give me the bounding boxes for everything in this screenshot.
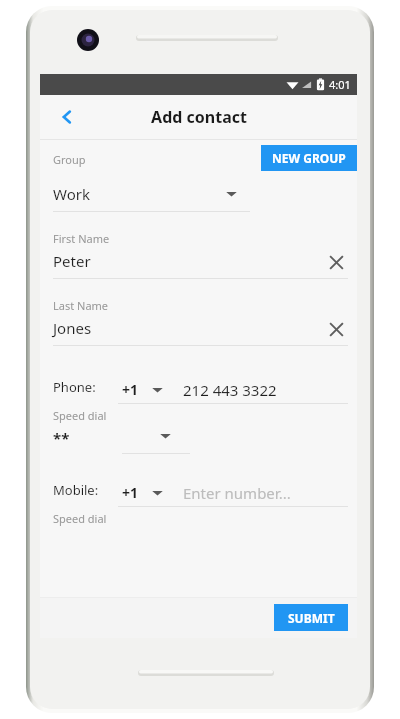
staticText: Mobile: xyxy=(53,481,99,499)
button[interactable]: Clear Last Name xyxy=(323,316,349,342)
staticText: NEW GROUP xyxy=(272,150,346,166)
staticText: SUBMIT xyxy=(288,610,335,626)
staticText: Speed dial xyxy=(53,408,107,423)
staticText: 4:01 xyxy=(329,77,351,92)
staticText: ** xyxy=(53,428,70,448)
staticText: Add contact xyxy=(151,106,247,128)
staticText: Peter xyxy=(53,251,91,271)
button[interactable]: Clear First Name xyxy=(323,249,349,275)
button[interactable]: Select speed dial xyxy=(152,423,178,449)
staticText: +1 xyxy=(122,483,139,502)
staticText: +1 xyxy=(122,380,139,399)
button[interactable]: SUBMIT xyxy=(274,604,348,631)
button[interactable]: Mobile: xyxy=(40,474,357,507)
staticText: Jones xyxy=(53,318,92,338)
button[interactable]: Phone: xyxy=(40,371,357,404)
staticText: Last Name xyxy=(53,298,109,313)
button[interactable]: NEW GROUP xyxy=(261,145,357,171)
staticText: Speed dial xyxy=(53,511,107,526)
staticText: 212 443 3322 xyxy=(183,380,277,400)
staticText: Enter number... xyxy=(183,483,291,503)
button[interactable]: Jones xyxy=(40,313,357,346)
button[interactable]: Peter xyxy=(40,246,357,279)
staticText: Phone: xyxy=(53,378,96,396)
button[interactable]: Back xyxy=(50,100,84,134)
staticText: Work xyxy=(53,184,90,204)
staticText: First Name xyxy=(53,231,110,246)
button[interactable]: Work xyxy=(40,178,357,212)
staticText: Group xyxy=(53,152,86,167)
